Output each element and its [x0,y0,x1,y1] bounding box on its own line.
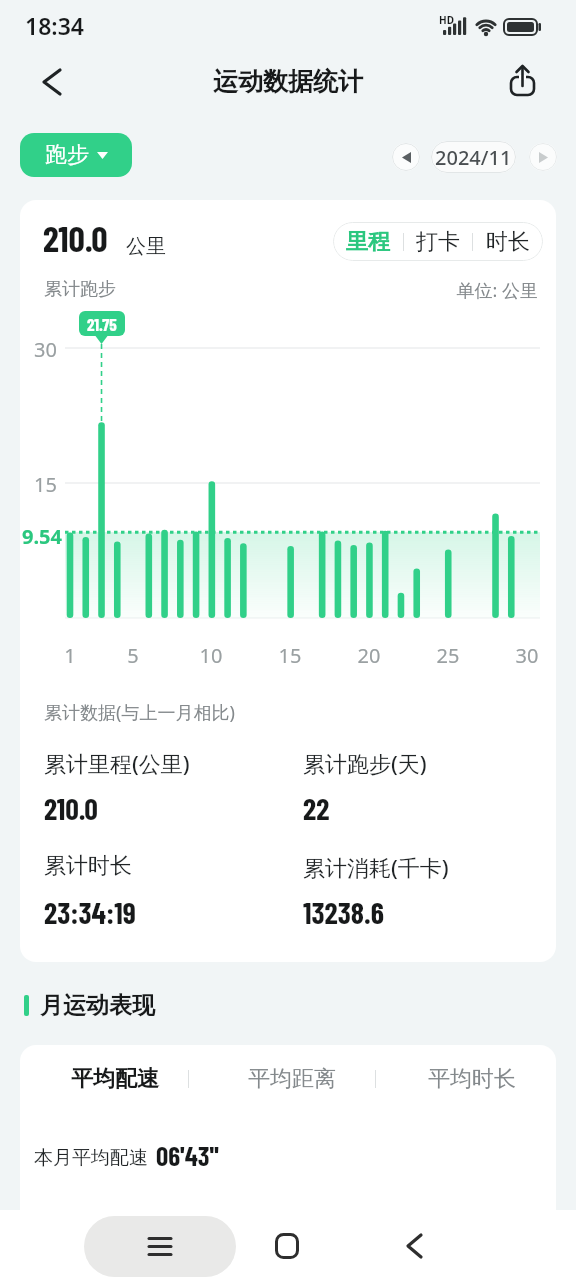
staticText: 累计数据(与上一月相比) [44,700,235,725]
staticText: 06'43'' [156,1139,219,1171]
staticText: 累计消耗(千卡) [303,852,449,882]
staticText: 打卡 [416,228,460,256]
staticText: 13238.6 [303,894,384,930]
button[interactable]: 跑步 [20,133,132,177]
button[interactable]: 打卡 [404,222,472,261]
button[interactable] [503,60,543,102]
button[interactable] [30,62,70,102]
staticText: HD [439,13,454,27]
button[interactable] [391,1224,435,1268]
staticText: 18:34 [25,10,84,41]
staticText: 25 [428,642,468,669]
staticText: 里程 [346,228,390,256]
staticText: 15 [270,642,310,669]
button[interactable] [529,143,557,171]
staticText: 15 [34,471,57,498]
staticText: 单位: 公里 [398,278,538,303]
staticText: 5 [113,642,153,669]
staticText: 累计跑步 [44,278,116,301]
staticText: 21.75 [87,314,117,334]
staticText: 30 [34,336,57,363]
staticText: 运动数据统计 [0,66,576,97]
staticText: 累计跑步(天) [303,748,427,778]
button[interactable]: 里程 [333,222,403,261]
staticText: 210.0 [43,216,108,259]
staticText: 20 [349,642,389,669]
button[interactable]: 2024/11 [431,141,516,173]
staticText: 1 [50,642,90,669]
button[interactable]: 平均距离 [222,1059,362,1099]
staticText: 10 [191,642,231,669]
staticText: 9.54 [22,523,62,550]
staticText: 跑步 [45,141,89,169]
staticText: 时长 [486,228,530,256]
button[interactable] [392,143,420,171]
staticText: 月运动表现 [40,991,155,1020]
button[interactable]: 平均时长 [402,1059,542,1099]
staticText: 累计时长 [44,852,132,880]
staticText: 平均时长 [428,1065,516,1093]
staticText: 2024/11 [435,144,512,171]
button[interactable] [84,1216,236,1277]
button[interactable] [265,1224,309,1268]
staticText: 公里 [126,234,166,259]
staticText: 210.0 [44,790,98,826]
staticText: 本月平均配速 [34,1146,148,1170]
staticText: 23:34:19 [44,894,136,930]
staticText: 累计里程(公里) [44,748,190,778]
staticText: 30 [507,642,547,669]
button[interactable]: 平均配速 [45,1059,185,1099]
staticText: 22 [303,790,330,826]
staticText: 平均距离 [248,1065,336,1093]
staticText: 平均配速 [71,1065,159,1093]
button[interactable]: 时长 [473,222,543,261]
